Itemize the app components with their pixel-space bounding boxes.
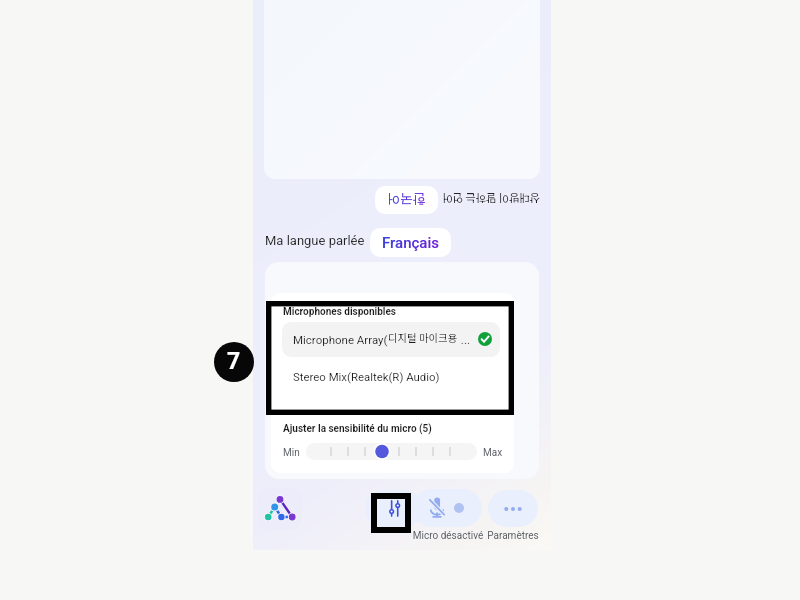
staticText: Micro désactivé	[411, 530, 485, 542]
staticText: Français	[382, 234, 440, 252]
staticText: 7	[227, 348, 241, 375]
staticText: 상대방이 말하는 언어	[442, 191, 540, 207]
staticText: Ma langue parlée	[265, 233, 365, 248]
button[interactable]: 한국어	[375, 186, 438, 214]
staticText: Microphone Array(	[293, 333, 388, 346]
button[interactable]	[306, 443, 477, 460]
button[interactable]: Stereo Mix(Realtek(R) Audio)	[284, 365, 500, 389]
staticText: Ajuster la sensibilité du micro (5)	[283, 423, 432, 435]
button[interactable]: App logo	[258, 487, 302, 531]
staticText: Max	[483, 447, 503, 459]
staticText: Stereo Mix(Realtek(R) Audio)	[293, 370, 440, 383]
button[interactable]: Microphone Array(	[282, 322, 500, 357]
button[interactable]: Paramètres	[488, 490, 538, 527]
staticText: Microphones disponibles	[283, 306, 397, 318]
staticText: Min	[283, 447, 300, 459]
staticText: ...	[458, 333, 470, 346]
button[interactable]: Micro désactivé	[413, 489, 482, 527]
button[interactable]: Français	[370, 228, 451, 257]
button[interactable]: Réglages audio	[365, 490, 423, 527]
staticText: Paramètres	[484, 530, 542, 542]
staticText: 디지털 마이크용	[388, 330, 458, 345]
staticText: 한국어	[387, 192, 426, 208]
